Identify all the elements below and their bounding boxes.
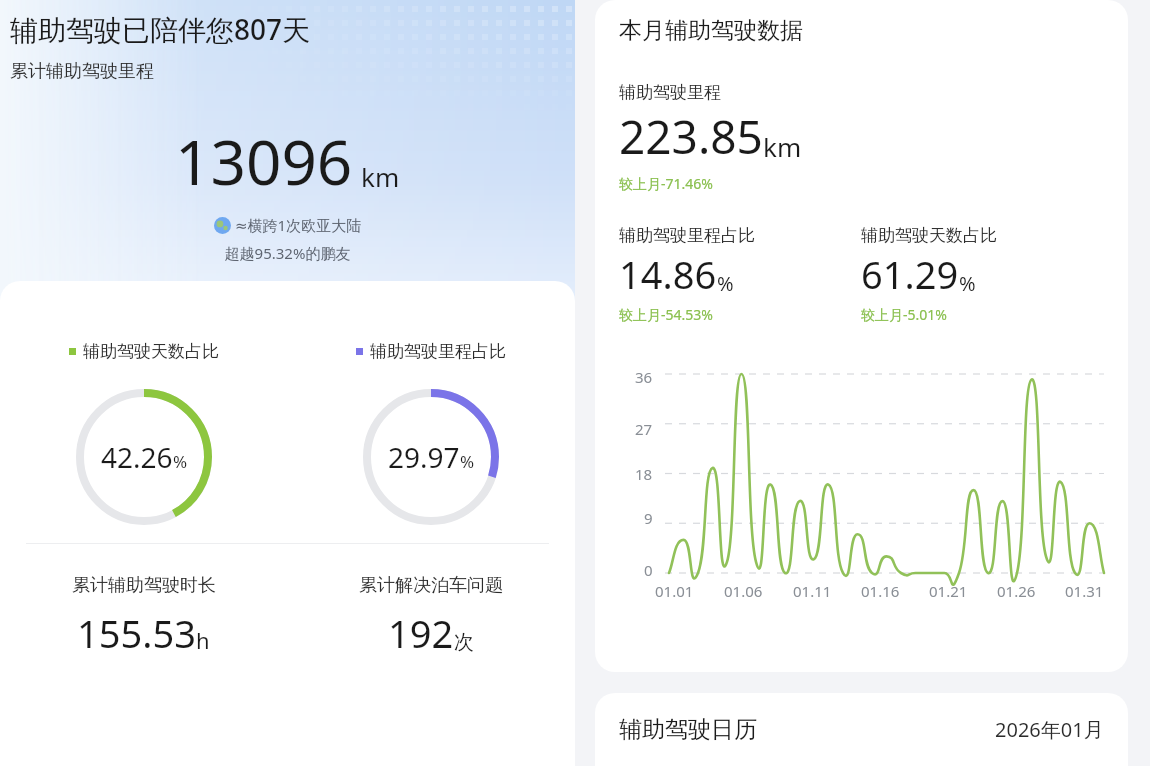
staticText: 01.21 xyxy=(929,581,968,601)
staticText: 超越95.32%的鹏友 xyxy=(0,243,575,263)
staticText: 2026年01月 xyxy=(995,716,1104,743)
staticText: % xyxy=(460,450,475,473)
staticText: 29.97 xyxy=(388,438,460,476)
staticText: 01.11 xyxy=(793,581,832,601)
staticText: 01.16 xyxy=(861,581,900,601)
staticText: 155.53 xyxy=(77,607,196,659)
staticText: % xyxy=(717,270,734,297)
staticText: 次 xyxy=(454,630,474,655)
staticText: 36 xyxy=(635,367,653,387)
staticText: km xyxy=(361,159,400,194)
staticText: 累计解决泊车问题 xyxy=(359,574,503,597)
staticText: 辅助驾驶里程占比 xyxy=(370,341,506,362)
staticText: 较上月-54.53% xyxy=(619,305,713,324)
other: 地球 xyxy=(214,217,231,234)
staticText: 18 xyxy=(635,464,653,484)
staticText: % xyxy=(173,450,188,473)
staticText: 14.86 xyxy=(619,248,717,300)
staticText: 较上月-71.46% xyxy=(619,174,713,193)
staticText: % xyxy=(959,270,976,297)
staticText: 61.29 xyxy=(861,248,959,300)
staticText: 辅助驾驶里程 xyxy=(619,82,721,103)
staticText: 累计辅助驾驶里程 xyxy=(10,60,154,83)
staticText: 9 xyxy=(644,508,653,528)
staticText: h xyxy=(196,625,210,655)
staticText: 192 xyxy=(388,607,454,659)
staticText: 01.26 xyxy=(997,581,1036,601)
staticText: 辅助驾驶日历 xyxy=(619,715,757,744)
staticText: 42.26 xyxy=(101,438,173,476)
staticText: km xyxy=(763,129,802,164)
staticText: 13096 xyxy=(175,119,353,203)
staticText: 辅助驾驶天数占比 xyxy=(861,225,997,246)
staticText: 01.01 xyxy=(655,581,694,601)
staticText: 01.06 xyxy=(724,581,763,601)
staticText: 辅助驾驶里程占比 xyxy=(619,225,755,246)
staticText: 0 xyxy=(644,560,653,580)
staticText: 01.31 xyxy=(1065,581,1104,601)
button[interactable]: 辅助驾驶日历 xyxy=(595,693,1128,766)
staticText: 辅助驾驶已陪伴您807天 xyxy=(10,10,311,48)
staticText: 27 xyxy=(635,419,653,439)
staticText: 本月辅助驾驶数据 xyxy=(619,16,803,45)
staticText: 223.85 xyxy=(619,105,763,168)
staticText: 辅助驾驶天数占比 xyxy=(83,341,219,362)
staticText: 累计辅助驾驶时长 xyxy=(72,574,216,597)
staticText: 较上月-5.01% xyxy=(861,305,947,324)
staticText: ≈横跨1次欧亚大陆 xyxy=(235,215,362,235)
